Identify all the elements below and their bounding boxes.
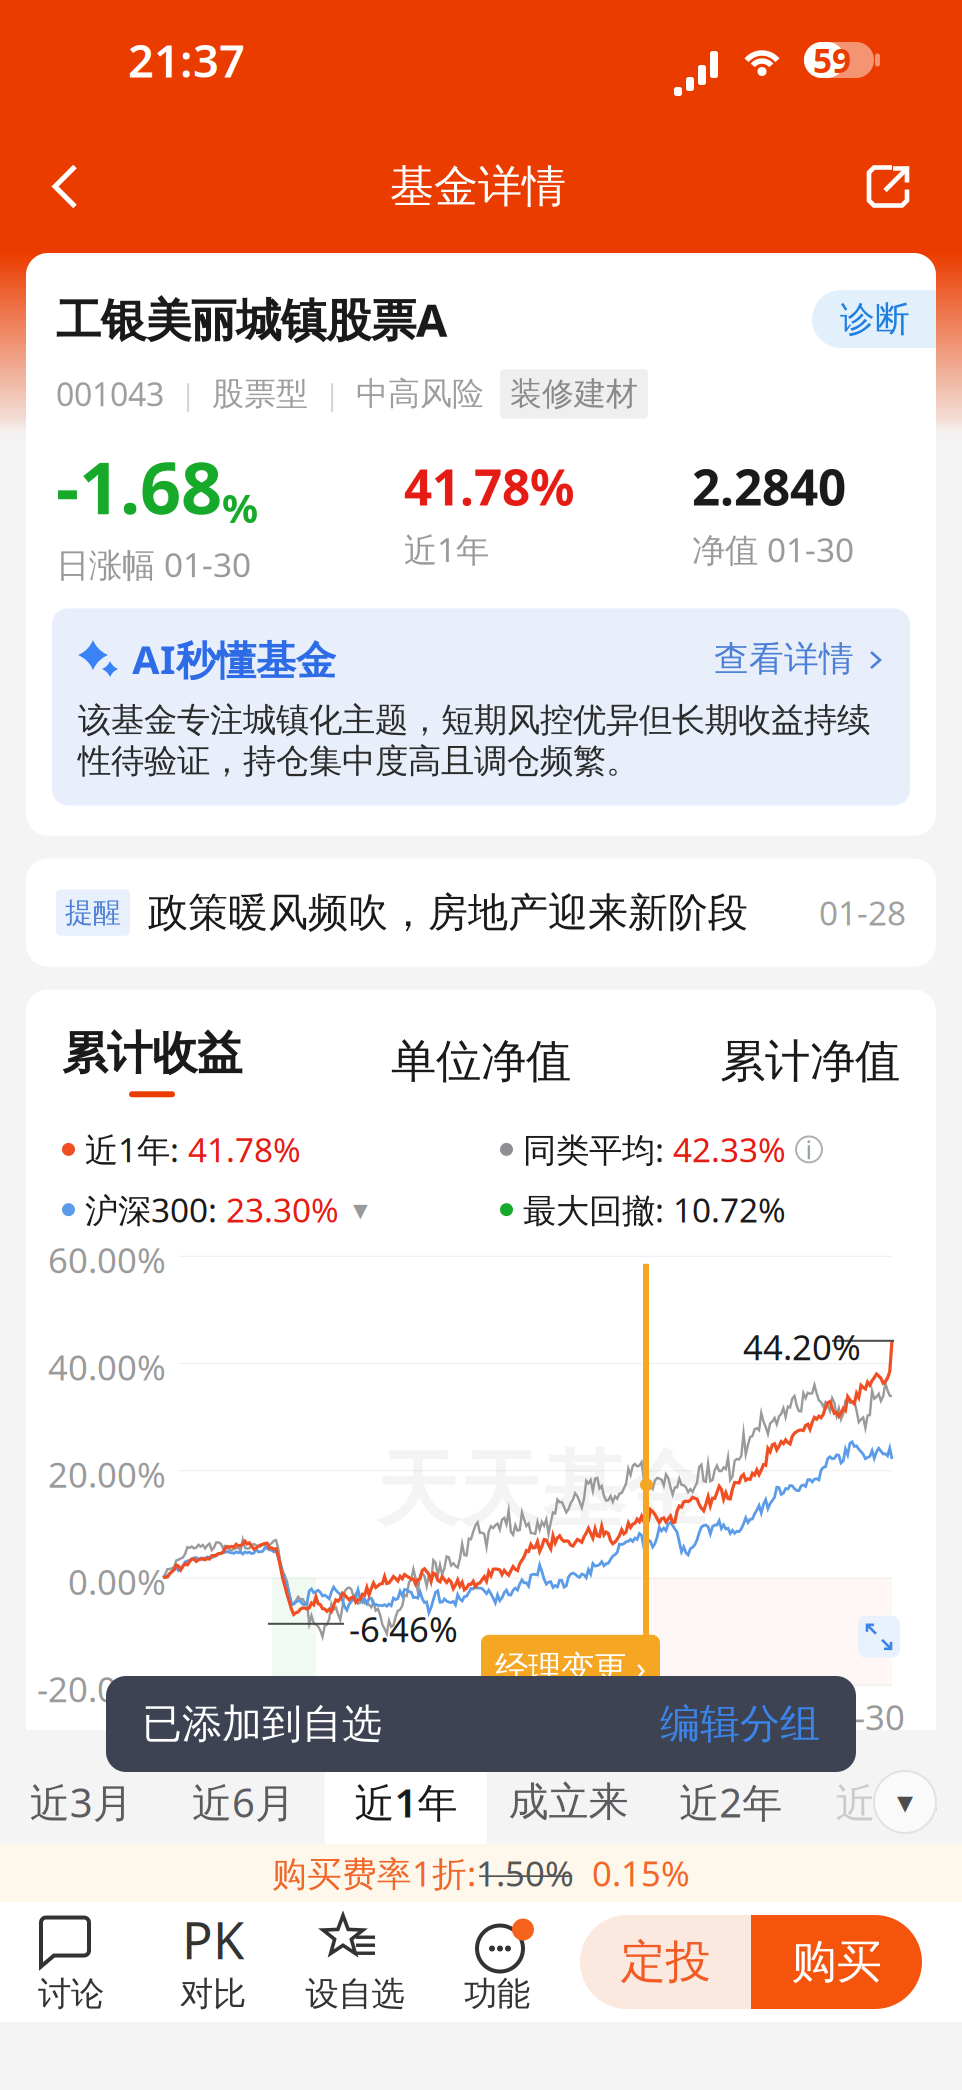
staticText: % [222,481,258,534]
button[interactable]: 设自选 [284,1902,426,2022]
button[interactable]: 查看详情 [714,638,884,680]
staticText: 讨论 [38,1973,104,2014]
staticText: 装修建材 [510,374,638,413]
staticText: 近3月 [30,1775,133,1828]
staticText: 2.2840 [692,454,846,519]
staticText: 近2年 [679,1775,782,1828]
staticText: 对比 [180,1973,246,2014]
staticText: 60.00% [48,1237,166,1283]
button[interactable]: 功能 [426,1902,568,2022]
staticText: 42.33% [673,1127,786,1172]
button[interactable]: 讨论 [0,1902,142,2022]
staticText: 23.30% [226,1187,339,1232]
button[interactable]: PK [142,1902,284,2022]
staticText: ▾ [897,1784,913,1820]
button[interactable]: 定投 [580,1915,751,2009]
staticText: 10.72% [673,1187,786,1232]
staticText: 近3年 [835,1775,938,1828]
button[interactable]: 近1年 [325,1760,487,1844]
staticText: ▾ [353,1193,368,1226]
staticText: | [324,374,340,413]
staticText: 股票型 [212,374,308,413]
button[interactable]: 诊断 [812,290,936,348]
staticText: 已添加到自选 [142,1699,382,1748]
staticText: 购买 [791,1934,881,1990]
staticText: 定投 [620,1934,710,1990]
staticText: 沪深300: [85,1187,226,1232]
staticText: 日涨幅 01-30 [56,542,251,586]
staticText: 同类平均: [523,1127,673,1172]
staticText: 20.00% [48,1451,166,1497]
staticText: 净值 01-30 [692,527,854,571]
staticText: 累计净值 [720,1034,900,1089]
staticText: 0.15% [574,1850,690,1896]
staticText: 单位净值 [391,1034,571,1089]
button[interactable]: 购买 [751,1915,922,2009]
staticText: 诊断 [840,298,910,340]
staticText: 经理变更 › [495,1645,646,1689]
staticText: 01-28 [819,890,906,935]
staticText: 工银美丽城镇股票A [56,289,447,349]
button[interactable]: Back [22,139,114,233]
staticText: 编辑分组 [660,1699,820,1748]
staticText: 40.00% [48,1344,166,1390]
staticText: | [180,374,196,413]
button[interactable]: 近6月 [162,1760,325,1844]
staticText: -20.00% [37,1666,166,1712]
staticText: -6.46% [349,1606,458,1652]
staticText: 最大回撤: [523,1187,673,1232]
staticText: 功能 [464,1973,530,2014]
staticText: 累计收益 [62,1026,242,1081]
button[interactable]: Expand chart [858,1616,900,1658]
staticText: 44.20% [743,1324,861,1370]
button[interactable]: 经理变更 › [481,1635,660,1699]
staticText: i [805,1133,812,1166]
staticText: 基金详情 [390,159,566,213]
staticText: PK [182,1906,244,1973]
staticText: 近6月 [192,1775,295,1828]
staticText: 近1年 [404,527,489,571]
staticText: 59 [813,38,851,82]
staticText: 1.50% [476,1850,574,1896]
button[interactable]: More periods [874,1771,936,1833]
button[interactable]: 近3月 [0,1760,162,1844]
staticText: 设自选 [305,1973,404,2014]
staticText: 该基金专注城镇化主题，短期风控优异但长期收益持续性待验证，持仓集中度高且调仓频繁… [78,700,870,782]
staticText: 政策暖风频吹，房地产迎来新阶段 [148,888,748,937]
staticText: 41.78% [188,1127,301,1172]
staticText: -1.68 [56,438,222,534]
staticText: AI秒懂基金 [132,632,336,686]
staticText: 近1年 [354,1775,457,1828]
button[interactable]: 近2年 [650,1760,812,1844]
staticText: 0.00% [68,1559,166,1605]
staticText: 41.78% [404,454,574,519]
button[interactable]: 提醒 [0,836,962,967]
staticText: 查看详情 [714,638,854,680]
button[interactable]: 成立来 [487,1760,650,1844]
button[interactable]: Share [842,139,934,233]
staticText: 提醒 [65,895,121,930]
staticText: 21:37 [128,30,245,90]
staticText: 购买费率1折: [272,1850,476,1896]
staticText: 近1年: [85,1127,188,1172]
staticText: 成立来 [508,1777,628,1826]
staticText: 01-30 [814,1694,905,1740]
staticText: 001043 [56,373,164,415]
staticText: 中高风险 [356,374,484,413]
staticText: 天天基金 [376,1440,708,1541]
button[interactable]: 近3年 [812,1760,962,1844]
button[interactable]: 编辑分组 [660,1699,820,1748]
